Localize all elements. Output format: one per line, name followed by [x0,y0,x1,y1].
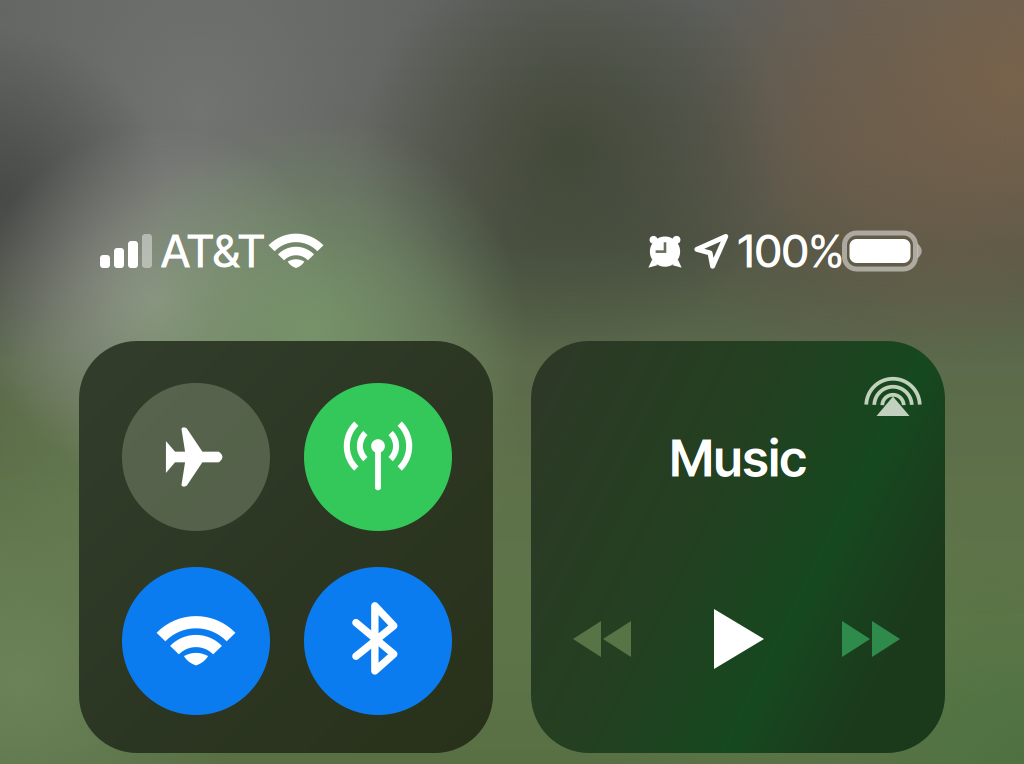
button[interactable]: Airplane Mode [122,383,270,531]
button[interactable]: Fast Forward [831,604,911,674]
button[interactable]: AirPlay [861,362,925,426]
button[interactable]: Rewind [562,604,642,674]
staticText: 100% [737,224,844,278]
button[interactable]: Bluetooth [304,567,452,715]
staticText: AT&T [160,224,265,278]
button[interactable]: Cellular Data [304,383,452,531]
button[interactable]: Wi-Fi [122,567,270,715]
button[interactable]: Play [698,599,778,679]
staticText: Music [669,427,806,489]
